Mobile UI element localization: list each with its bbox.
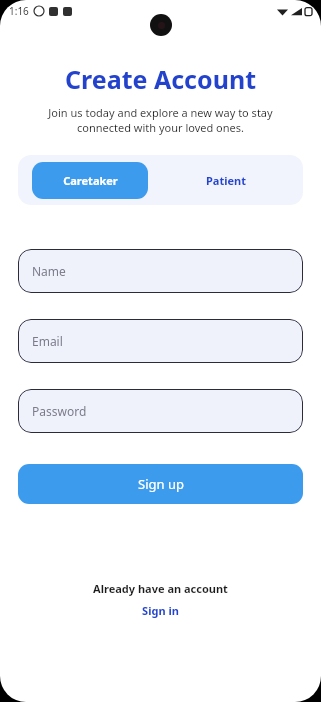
button[interactable]: Email	[18, 319, 303, 363]
button[interactable]: Name	[18, 249, 303, 293]
staticText: Create Account	[65, 62, 256, 96]
button[interactable]: Password	[18, 389, 303, 433]
button[interactable]: Sign up	[18, 464, 303, 504]
staticText: Caretaker	[63, 173, 118, 188]
staticText: Join us today and explore a new way to s…	[22, 105, 299, 135]
button[interactable]: Patient	[148, 162, 303, 199]
staticText: Email	[32, 333, 63, 349]
staticText: Patient	[206, 173, 246, 188]
staticText: Sign in	[142, 603, 179, 618]
staticText: Name	[32, 263, 66, 279]
staticText: Already have an account	[93, 581, 228, 596]
staticText: Sign up	[138, 475, 184, 493]
button[interactable]: Sign in	[134, 601, 187, 620]
button[interactable]: Caretaker	[32, 162, 148, 199]
staticText: Password	[32, 403, 87, 419]
staticText: 1:16	[9, 4, 29, 18]
